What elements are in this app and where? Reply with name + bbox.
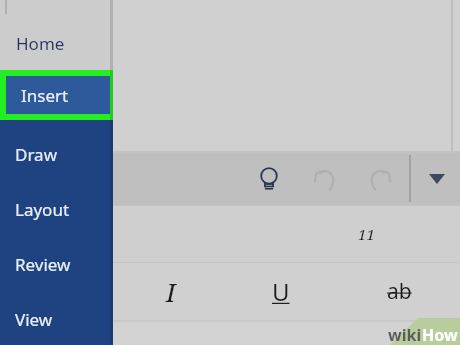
button[interactable]: Draw	[0, 132, 113, 176]
button[interactable]: Tell me what you want to do	[248, 158, 290, 200]
button[interactable]: ab	[374, 266, 424, 316]
button[interactable]: Layout	[0, 187, 113, 231]
staticText: U	[272, 275, 290, 308]
staticText: Review	[15, 253, 71, 276]
button[interactable]: More options	[416, 158, 458, 200]
button[interactable]: Insert	[0, 70, 113, 120]
staticText: Insert	[21, 84, 69, 107]
button[interactable]: Redo	[358, 158, 400, 200]
button[interactable]: U	[258, 266, 304, 316]
staticText: Layout	[15, 198, 70, 221]
button[interactable]: Home	[0, 20, 113, 66]
staticText: wiki	[388, 324, 422, 345]
staticText: View	[15, 308, 53, 331]
button[interactable]: View	[0, 297, 113, 341]
staticText: 11	[358, 224, 375, 244]
staticText: Draw	[15, 143, 57, 166]
button[interactable]: 11	[340, 214, 392, 254]
staticText: Home	[16, 32, 65, 55]
button[interactable]: Undo	[305, 158, 347, 200]
button[interactable]: Review	[0, 242, 113, 286]
button[interactable]: I	[148, 266, 194, 316]
staticText: I	[166, 274, 176, 309]
staticText: How	[422, 324, 458, 345]
staticText: ab	[387, 277, 412, 306]
